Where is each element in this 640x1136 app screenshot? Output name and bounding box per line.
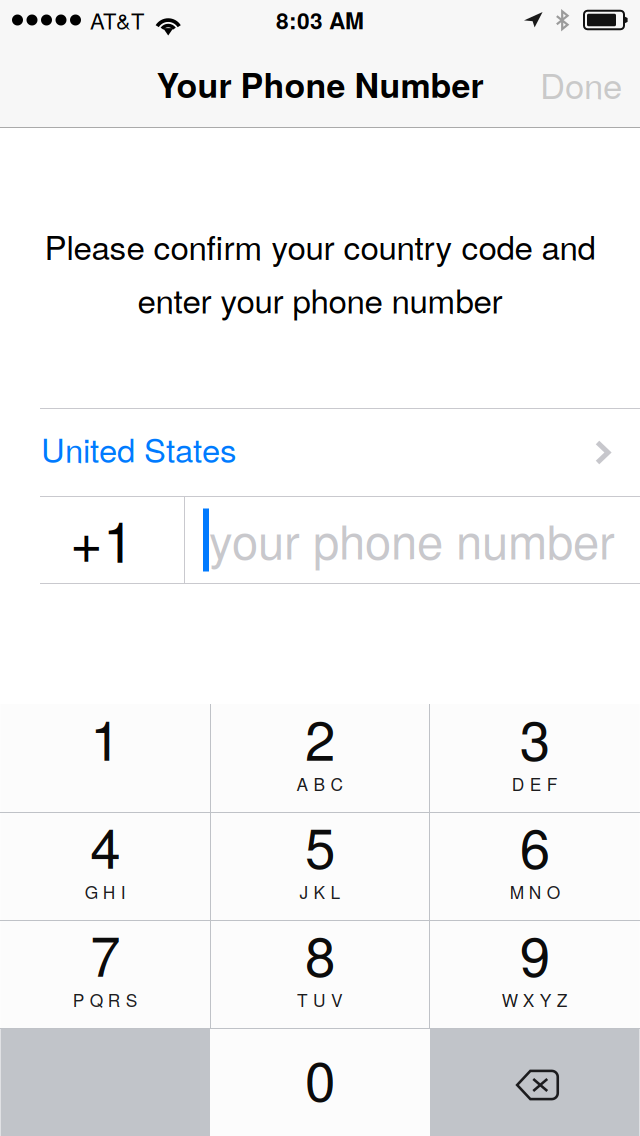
staticText: A B C — [296, 771, 343, 796]
staticText: United States — [41, 425, 236, 472]
staticText: Please confirm your country code and — [44, 222, 595, 269]
button[interactable]: 8 — [211, 920, 429, 1028]
staticText: Your Phone Number — [156, 60, 483, 108]
button[interactable]: Delete — [430, 1028, 639, 1136]
button[interactable]: 5 — [211, 812, 429, 920]
staticText: Done — [540, 59, 622, 109]
staticText: enter your phone number — [137, 275, 502, 323]
staticText: 0 — [305, 1039, 335, 1117]
button[interactable]: 7 — [0, 920, 210, 1028]
staticText: +1 — [70, 498, 134, 579]
button[interactable]: 2 — [211, 704, 429, 812]
button[interactable]: 4 — [0, 812, 210, 920]
staticText: 2 — [305, 698, 335, 776]
staticText: T U V — [297, 987, 343, 1012]
staticText: 7 — [90, 914, 120, 992]
staticText: 8 — [305, 914, 335, 992]
staticText: 1 — [90, 698, 120, 776]
staticText: 8:03 AM — [276, 4, 364, 36]
staticText: 3 — [520, 698, 550, 776]
button[interactable]: 3 — [430, 704, 639, 812]
staticText: D E F — [512, 771, 558, 796]
button[interactable]: 0 — [210, 1028, 430, 1136]
staticText: W X Y Z — [502, 987, 568, 1012]
staticText: AT&T — [90, 4, 144, 36]
staticText: 5 — [305, 806, 335, 884]
button[interactable]: 6 — [430, 812, 639, 920]
staticText: M N O — [510, 879, 560, 904]
staticText: 9 — [520, 914, 550, 992]
staticText: G H I — [85, 879, 126, 904]
staticText: your phone number — [209, 505, 615, 573]
staticText: J K L — [299, 879, 340, 904]
button[interactable]: 1 — [0, 704, 210, 812]
button[interactable]: United States — [0, 409, 640, 496]
button[interactable]: Done — [540, 40, 640, 128]
staticText: 4 — [90, 806, 120, 884]
button[interactable]: 9 — [430, 920, 639, 1028]
staticText: 6 — [520, 806, 550, 884]
staticText: P Q R S — [73, 987, 138, 1012]
